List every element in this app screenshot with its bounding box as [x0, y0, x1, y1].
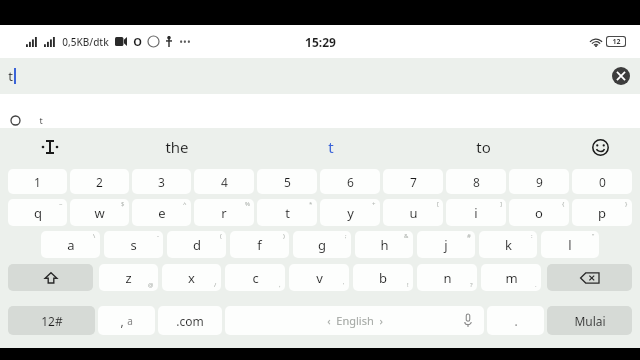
button[interactable]: the [100, 128, 254, 166]
button[interactable]: c [225, 264, 285, 291]
button[interactable]: u [383, 199, 443, 226]
button[interactable]: 12# [8, 306, 95, 335]
button[interactable]: 1 [8, 169, 67, 194]
button[interactable]: Emoji [560, 128, 640, 166]
staticText: $ [121, 200, 125, 208]
button[interactable]: z [99, 264, 158, 291]
staticText: n [443, 269, 452, 287]
staticText: f [257, 236, 262, 254]
staticText: to [476, 137, 491, 157]
staticText: 5 [284, 174, 291, 190]
staticText: 9 [536, 174, 543, 190]
staticText: [ [437, 200, 439, 208]
staticText: b [379, 269, 387, 287]
staticText: ] [500, 200, 502, 208]
button[interactable]: g [293, 231, 351, 258]
button[interactable]: 5 [257, 169, 317, 194]
button[interactable]: h [355, 231, 413, 258]
button[interactable]: m [481, 264, 541, 291]
button[interactable]: b [353, 264, 413, 291]
button[interactable]: Backspace [547, 264, 632, 291]
button[interactable]: k [479, 231, 537, 258]
staticText: 2 [96, 174, 103, 190]
button[interactable]: a [41, 231, 100, 258]
button[interactable]: s [104, 231, 163, 258]
button[interactable]: Clear text [612, 67, 630, 85]
staticText: 4 [221, 174, 228, 190]
staticText: u [409, 204, 418, 222]
staticText: i [474, 204, 478, 222]
button[interactable]: n [417, 264, 477, 291]
button[interactable]: to [407, 128, 560, 166]
button[interactable]: Shift [8, 264, 93, 291]
button[interactable]: 9 [509, 169, 569, 194]
staticText: - [157, 232, 159, 240]
staticText: 12 [612, 37, 621, 46]
button[interactable]: l [541, 231, 599, 258]
staticText: 6 [347, 174, 354, 190]
button[interactable]: 8 [446, 169, 506, 194]
staticText: ^ [183, 200, 187, 208]
button[interactable]: t [0, 58, 640, 94]
staticText: ‹ English › [327, 313, 383, 328]
button[interactable]: p [572, 199, 632, 226]
button[interactable]: d [167, 231, 226, 258]
staticText: t [8, 67, 13, 85]
staticText: Mulai [574, 313, 606, 329]
button[interactable]: 2 [70, 169, 129, 194]
button[interactable]: 7 [383, 169, 443, 194]
staticText: d [193, 236, 201, 254]
button[interactable]: j [417, 231, 475, 258]
button[interactable]: v [289, 264, 349, 291]
staticText: ••• [179, 35, 191, 49]
staticText: " [592, 232, 595, 240]
button[interactable]: w [70, 199, 129, 226]
staticText: O [133, 34, 142, 49]
staticText: } [625, 200, 628, 208]
staticText: l [568, 236, 572, 254]
staticText: ; [345, 232, 347, 240]
button[interactable]: . [487, 306, 544, 335]
button[interactable]: r [194, 199, 254, 226]
staticText: ! [407, 281, 409, 289]
staticText: j [444, 236, 448, 254]
staticText: t [39, 114, 43, 126]
button[interactable]: Space [225, 306, 484, 335]
staticText: q [34, 204, 42, 222]
staticText: 7 [410, 174, 417, 190]
staticText: s [130, 236, 137, 254]
button[interactable]: Mulai [547, 306, 632, 335]
staticText: . [535, 281, 537, 289]
button[interactable]: .com [158, 306, 222, 335]
staticText: a [127, 314, 133, 328]
button[interactable]: f [230, 231, 289, 258]
button[interactable]: i [446, 199, 506, 226]
staticText: % [245, 200, 250, 208]
button[interactable]: y [320, 199, 380, 226]
staticText: & [404, 232, 409, 240]
button[interactable]: t [257, 199, 317, 226]
button[interactable]: t [254, 128, 407, 166]
button[interactable]: o [509, 199, 569, 226]
button[interactable]: 4 [194, 169, 254, 194]
staticText: y [347, 204, 354, 222]
staticText: . [514, 313, 518, 329]
button[interactable]: 3 [132, 169, 191, 194]
staticText: / [214, 281, 217, 289]
staticText: , [279, 281, 281, 289]
button[interactable]: 6 [320, 169, 380, 194]
staticText: r [221, 204, 227, 222]
staticText: ) [283, 232, 285, 240]
button[interactable]: q [8, 199, 67, 226]
button[interactable]: Move cursor [0, 128, 100, 166]
staticText: t [285, 204, 290, 222]
staticText: , [120, 313, 124, 329]
staticText: 8 [473, 174, 480, 190]
staticText: h [380, 236, 389, 254]
button[interactable]: e [132, 199, 191, 226]
button[interactable]: Comma and settings [98, 306, 155, 335]
staticText: # [467, 232, 471, 240]
staticText: e [158, 204, 166, 222]
button[interactable]: 0 [572, 169, 632, 194]
button[interactable]: x [162, 264, 221, 291]
